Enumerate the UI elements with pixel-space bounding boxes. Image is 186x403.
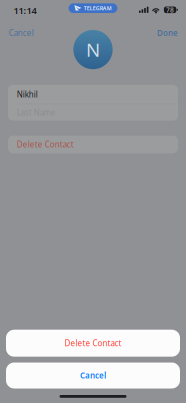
button[interactable]: Cancel: [6, 362, 180, 388]
staticText: Done: [157, 27, 178, 38]
staticText: 11:14: [14, 4, 37, 17]
staticText: Delete Contact: [17, 139, 74, 150]
staticText: N: [86, 37, 100, 62]
staticText: Delete Contact: [64, 338, 121, 348]
staticText: Cancel: [9, 27, 34, 38]
staticText: Last Name: [17, 107, 56, 118]
staticText: Nikhil: [17, 89, 38, 100]
staticText: 78: [166, 5, 174, 14]
button[interactable]: Delete Contact: [6, 330, 180, 357]
button[interactable]: Nikhil: [8, 85, 178, 104]
button[interactable]: Done: [147, 22, 186, 43]
button[interactable]: Delete Contact: [8, 136, 178, 153]
button[interactable]: Cancel: [0, 22, 42, 43]
staticText: Cancel: [80, 370, 106, 381]
staticText: TELEGRAM: [84, 5, 112, 12]
